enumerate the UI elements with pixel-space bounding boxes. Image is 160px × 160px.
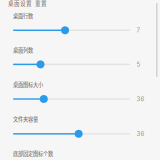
staticText: 桌面设置 <box>8 0 32 7</box>
staticText: 重置 <box>35 0 47 7</box>
staticText: 36 <box>136 95 144 103</box>
staticText: 5 <box>136 61 140 68</box>
staticText: 底部固定图标个数 <box>13 150 53 157</box>
button[interactable]: 重置 <box>35 0 47 7</box>
staticText: 7 <box>136 27 139 34</box>
staticText: 桌面列数 <box>13 46 33 54</box>
staticText: 文件夹容量 <box>13 115 38 123</box>
staticText: 桌面行数 <box>13 12 33 19</box>
staticText: 36 <box>136 130 144 137</box>
staticText: 桌面图标大小 <box>13 81 43 88</box>
